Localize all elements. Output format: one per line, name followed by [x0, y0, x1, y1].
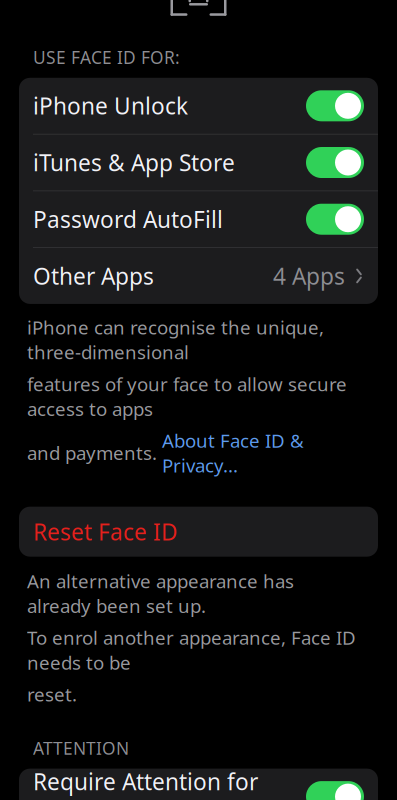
staticText: About Face ID & Privacy... — [162, 428, 304, 478]
staticText: USE FACE ID FOR: — [33, 46, 180, 69]
staticText: reset. — [27, 682, 77, 707]
button[interactable]: Password AutoFill — [19, 191, 378, 247]
button[interactable]: About Face ID & Privacy... — [162, 428, 304, 478]
staticText: Other Apps — [33, 261, 154, 291]
staticText: An alternative appearance has already be… — [27, 569, 294, 618]
staticText: Require Attention for Face ID — [33, 766, 258, 800]
staticText: Reset Face ID — [33, 517, 178, 547]
staticText: ATTENTION — [33, 737, 129, 760]
button[interactable]: iPhone Unlock — [19, 78, 378, 134]
staticText: Password AutoFill — [33, 204, 223, 234]
button[interactable]: iTunes & App Store — [19, 134, 378, 190]
staticText: To enrol another appearance, Face ID nee… — [27, 625, 356, 675]
staticText: 4 Apps — [273, 261, 345, 291]
staticText: iPhone Unlock — [33, 91, 188, 121]
staticText: iPhone can recognise the unique, three-d… — [27, 315, 324, 364]
staticText: features of your face to allow secure ac… — [27, 371, 347, 421]
staticText: iTunes & App Store — [33, 147, 235, 178]
button[interactable]: Reset Face ID — [19, 507, 378, 557]
button[interactable]: Other Apps — [19, 248, 378, 304]
staticText: and payments. — [27, 440, 162, 465]
button[interactable]: Require Attention for Face ID — [19, 769, 378, 800]
